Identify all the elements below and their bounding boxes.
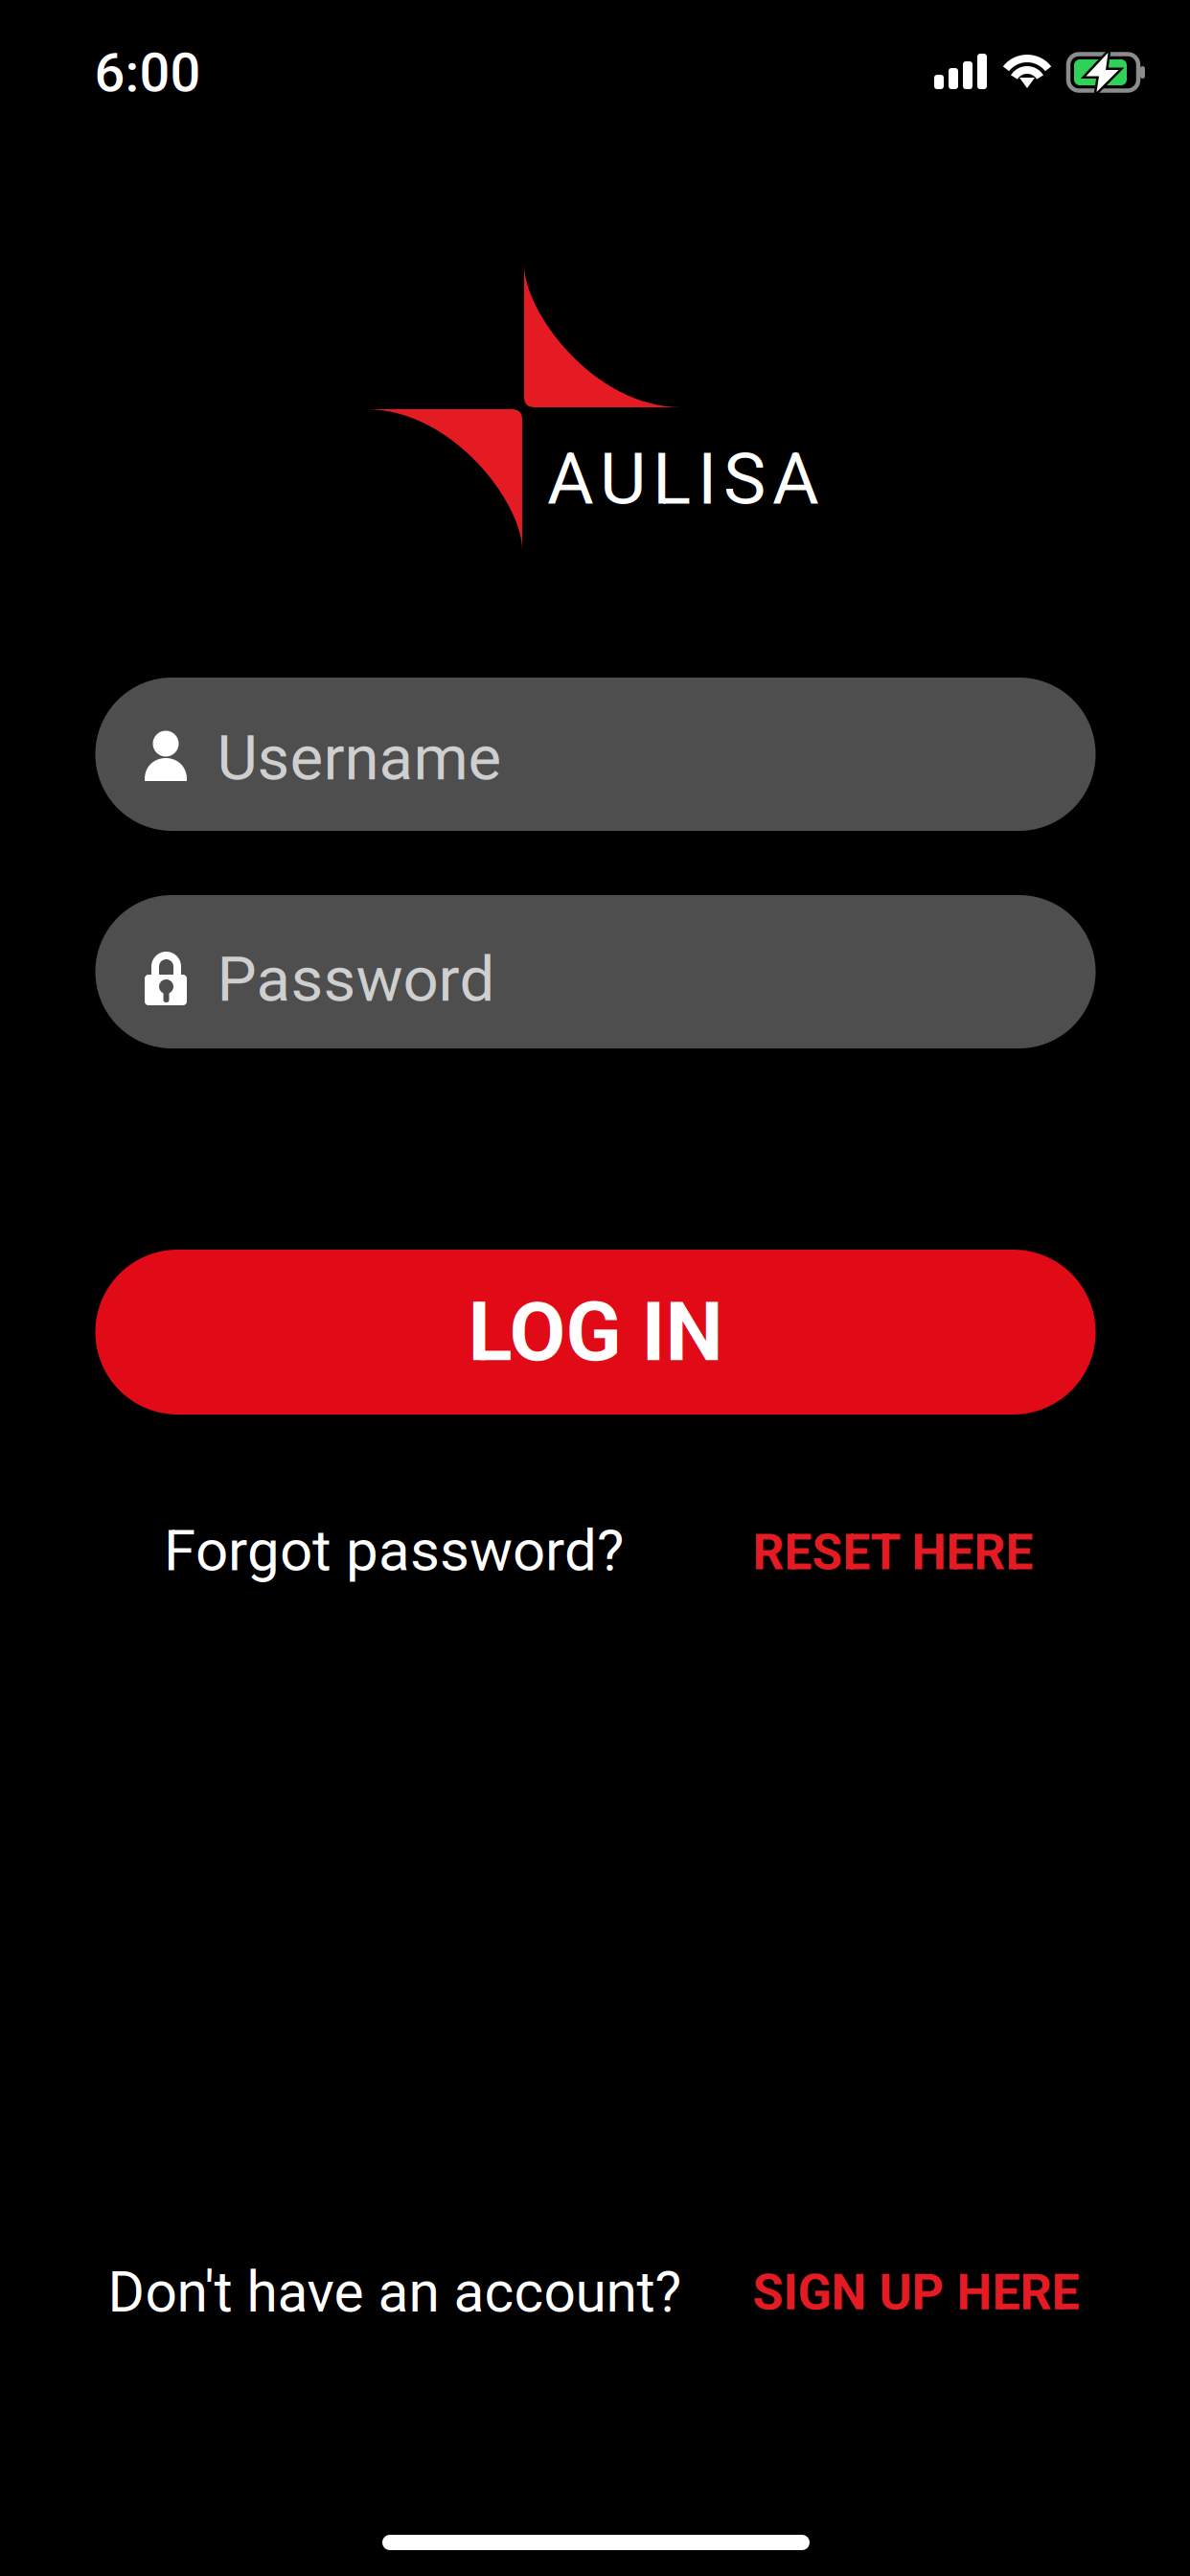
staticText: Username xyxy=(217,721,502,795)
button[interactable]: LOG IN xyxy=(95,1250,1096,1414)
button[interactable]: RESET HERE xyxy=(753,1524,1033,1581)
button[interactable]: Password xyxy=(95,895,1096,1048)
staticText: Don't have an account? xyxy=(108,2259,682,2325)
staticText: Forgot password? xyxy=(164,1517,624,1584)
staticText: LOG IN xyxy=(468,1284,723,1380)
staticText: SIGN UP HERE xyxy=(753,2263,1079,2321)
button[interactable]: Username xyxy=(95,678,1096,831)
staticText: Password xyxy=(217,943,495,1016)
button[interactable]: SIGN UP HERE xyxy=(753,2263,1079,2321)
staticText: 6:00 xyxy=(94,41,201,104)
staticText: RESET HERE xyxy=(753,1524,1033,1581)
staticText: AULISA xyxy=(547,437,819,521)
